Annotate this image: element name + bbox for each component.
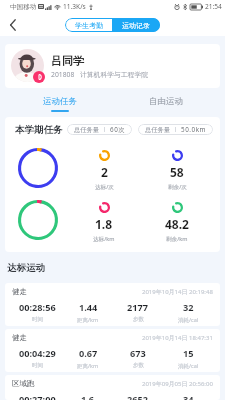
staticText: 48.2: [165, 216, 189, 232]
staticText: 步数: [133, 362, 144, 369]
button[interactable]: 吕同学: [5, 44, 220, 88]
staticText: 58: [170, 164, 184, 180]
button[interactable]: 总任务量: [67, 124, 132, 135]
staticText: 剩余/次: [168, 183, 187, 191]
staticText: 201808: [51, 70, 75, 79]
staticText: 50.0km: [181, 125, 207, 134]
staticText: 中国移动: [10, 3, 37, 11]
staticText: 34: [183, 393, 194, 400]
staticText: 60次: [110, 125, 126, 134]
button[interactable]: 运动记录: [112, 18, 160, 32]
staticText: 自由运动: [149, 96, 183, 107]
staticText: 1.8: [95, 216, 113, 232]
staticText: 2019年10月14日 20:19:48: [142, 288, 213, 296]
staticText: 达标/km: [93, 235, 115, 243]
button[interactable]: 学生考勤: [65, 18, 112, 32]
staticText: 2652: [127, 393, 149, 400]
staticText: 00:04:29: [19, 347, 56, 360]
staticText: 计算机科学与工程学院: [80, 70, 148, 79]
staticText: 运动任务: [43, 96, 77, 107]
staticText: 时间: [32, 316, 43, 323]
staticText: 运动记录: [122, 21, 150, 30]
button[interactable]: 健走: [5, 283, 220, 326]
staticText: 达标运动: [7, 262, 45, 274]
staticText: 学生考勤: [75, 21, 103, 30]
staticText: 1.44: [79, 301, 98, 314]
staticText: 673: [130, 347, 146, 360]
button[interactable]: 健走: [5, 329, 220, 372]
staticText: 总任务量: [145, 126, 171, 134]
staticText: 15: [183, 347, 194, 360]
staticText: 11.3K/s: [63, 2, 86, 11]
staticText: 距离/km: [77, 362, 99, 370]
staticText: 区域跑: [12, 379, 35, 388]
staticText: 1.6: [81, 393, 95, 400]
staticText: 本学期任务: [15, 124, 63, 136]
staticText: 剩余/km: [166, 235, 188, 243]
staticText: 2019年09月05日 20:56:00: [142, 380, 213, 388]
staticText: 21:54: [205, 2, 222, 11]
staticText: 32: [183, 301, 194, 314]
staticText: 总任务量: [74, 126, 100, 134]
staticText: 距离/km: [77, 316, 99, 324]
staticText: 吕同学: [51, 54, 84, 68]
staticText: 时间: [32, 362, 43, 369]
staticText: 达标/次: [95, 183, 114, 191]
staticText: 0.67: [79, 347, 98, 360]
staticText: 00:27:00: [19, 393, 56, 400]
button[interactable]: 区域跑: [5, 375, 220, 400]
button[interactable]: 自由运动: [113, 88, 219, 117]
staticText: 2177: [127, 301, 149, 314]
staticText: 健走: [12, 333, 27, 342]
staticText: 消耗/cal: [178, 362, 199, 370]
staticText: 消耗/cal: [178, 316, 199, 324]
button[interactable]: Back: [3, 15, 23, 35]
button[interactable]: 总任务量: [138, 124, 213, 135]
staticText: 步数: [133, 316, 144, 323]
staticText: 00:28:56: [19, 301, 56, 314]
button[interactable]: 运动任务: [7, 88, 113, 117]
staticText: 2: [101, 164, 108, 180]
staticText: 2019年10月14日 18:47:31: [142, 334, 213, 342]
staticText: 健走: [12, 287, 27, 296]
